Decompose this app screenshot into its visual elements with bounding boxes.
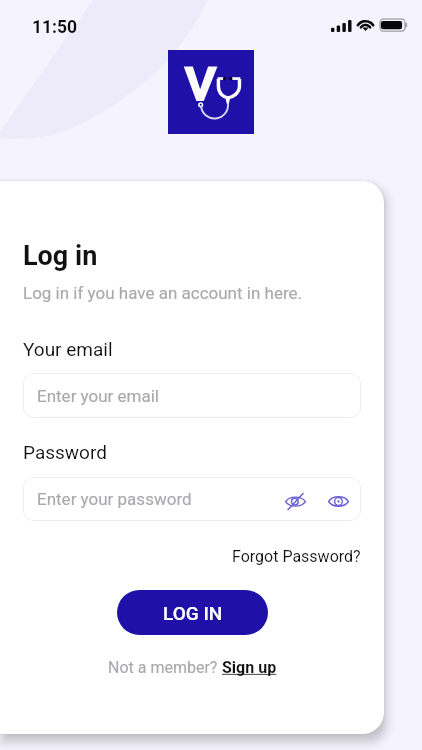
button[interactable]: Sign up — [222, 658, 277, 677]
staticText: Your email — [23, 338, 113, 360]
staticText: Not a member? — [108, 658, 222, 677]
staticText: Enter your email — [37, 386, 160, 406]
button[interactable]: Enter your email — [23, 373, 361, 418]
staticText: Log in if you have an account in here. — [23, 283, 303, 303]
staticText: Log in — [23, 240, 98, 272]
staticText: Password — [23, 441, 107, 463]
button[interactable]: Show password — [324, 487, 352, 515]
button[interactable]: Enter your password — [23, 477, 361, 521]
staticText: Enter your password — [37, 489, 192, 509]
staticText: LOG IN — [163, 602, 223, 624]
staticText: 11:50 — [32, 17, 78, 38]
button[interactable]: Hide password — [281, 487, 309, 515]
button[interactable]: LOG IN — [117, 590, 268, 635]
button[interactable]: Forgot Password? — [232, 547, 361, 566]
